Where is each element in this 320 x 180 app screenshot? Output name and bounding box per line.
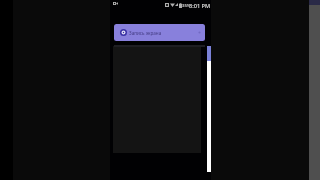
button[interactable]: Запись экрана: [114, 24, 205, 41]
staticText: 3:01 PM: [189, 2, 211, 10]
other: Screen recorder notification: [113, 2, 118, 5]
staticText: Запись экрана: [129, 30, 162, 36]
staticText: 35%: [182, 3, 191, 9]
